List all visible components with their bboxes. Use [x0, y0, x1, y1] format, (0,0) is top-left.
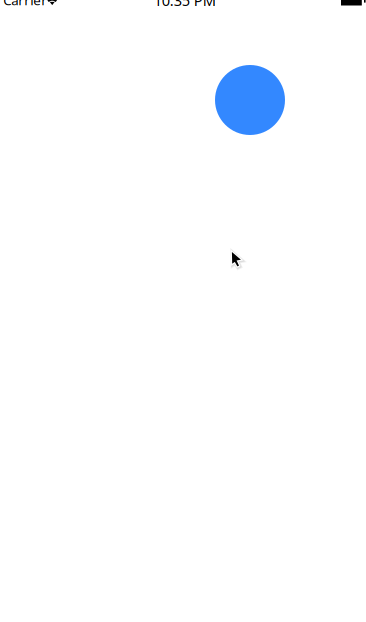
staticText: Carrier — [3, 0, 47, 9]
button[interactable]: Blue circle — [215, 65, 285, 135]
staticText: 10:35 PM — [154, 0, 216, 10]
